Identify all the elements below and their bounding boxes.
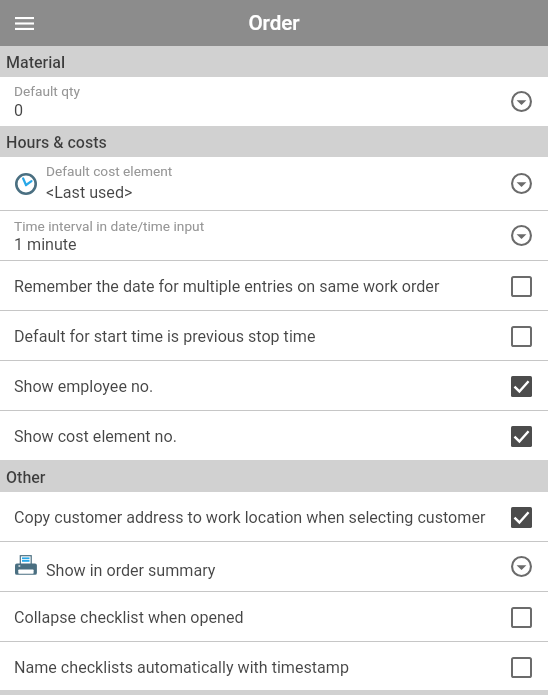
button[interactable]: Show cost element no. (0, 411, 548, 460)
staticText: Remember the date for multiple entries o… (14, 277, 440, 296)
button[interactable]: Default for start time is previous stop … (0, 311, 548, 360)
staticText: Other (6, 468, 46, 487)
staticText: Time interval in date/time input (14, 218, 205, 234)
staticText: <Last used> (46, 183, 133, 202)
staticText: 1 minute (14, 235, 77, 254)
button[interactable]: Collapse checklist when opened (0, 592, 548, 641)
staticText: Show in order summary (46, 561, 216, 580)
button[interactable]: Copy customer address to work location w… (0, 492, 548, 541)
button[interactable]: Name checklists automatically with times… (0, 642, 548, 690)
staticText: Default qty (14, 83, 80, 99)
button[interactable]: Default qty (0, 77, 548, 126)
staticText: Collapse checklist when opened (14, 608, 244, 627)
staticText: Hours & costs (6, 133, 107, 152)
staticText: Default for start time is previous stop … (14, 327, 316, 346)
button[interactable]: Open navigation menu (4, 3, 44, 43)
staticText: Copy customer address to work location w… (14, 508, 486, 527)
button[interactable]: Time interval in date/time input (0, 211, 548, 260)
button[interactable]: Default cost element (0, 157, 548, 210)
staticText: Show employee no. (14, 377, 154, 396)
staticText: Order (248, 11, 300, 35)
staticText: Default cost element (46, 163, 173, 179)
staticText: Material (6, 53, 66, 72)
button[interactable]: Remember the date for multiple entries o… (0, 261, 548, 310)
staticText: 0 (14, 101, 24, 120)
button[interactable]: Show in order summary (0, 542, 548, 591)
staticText: Name checklists automatically with times… (14, 658, 349, 677)
button[interactable]: Show employee no. (0, 361, 548, 410)
staticText: Show cost element no. (14, 427, 177, 446)
